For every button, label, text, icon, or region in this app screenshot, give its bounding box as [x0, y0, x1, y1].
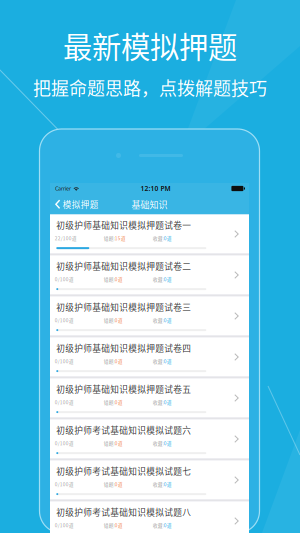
staticText: 0道 [164, 481, 172, 488]
staticText: 0道 [115, 481, 123, 488]
button[interactable]: 初级护师基础知识模拟押题试卷二 [50, 255, 249, 294]
staticText: Carrier [55, 185, 71, 192]
staticText: 把握命题思路，点拨解题技巧 [33, 74, 267, 101]
staticText: 初级护师基础知识模拟押题试卷一 [56, 219, 191, 231]
staticText: 初级护师基础知识模拟押题试卷二 [56, 260, 191, 272]
staticText: 0道 [115, 440, 123, 447]
button[interactable]: 初级护师基础知识模拟押题试卷五 [50, 378, 249, 417]
staticText: 0道 [164, 276, 172, 283]
staticText: 0道 [115, 317, 123, 324]
button[interactable]: 初级护师考试基础知识模拟试题七 [50, 460, 249, 499]
staticText: 收藏: [153, 481, 164, 488]
staticText: 初级护师基础知识模拟押题试卷三 [56, 301, 191, 313]
staticText: 0道 [164, 358, 172, 365]
staticText: 0道 [115, 358, 123, 365]
staticText: 0道 [164, 440, 172, 447]
staticText: 错题: [104, 358, 115, 365]
staticText: 0道 [164, 399, 172, 406]
button[interactable]: 初级护师考试基础知识模拟试题八 [50, 501, 249, 533]
staticText: 初级护师基础知识模拟押题试卷四 [56, 342, 191, 354]
staticText: 错题: [104, 399, 115, 406]
staticText: 错题: [104, 522, 115, 529]
button[interactable]: 初级护师考试基础知识模拟试题六 [50, 419, 249, 458]
staticText: 15道 [115, 235, 126, 242]
staticText: 0道 [115, 522, 123, 529]
staticText: 0/100道 [55, 276, 74, 283]
staticText: 初级护师考试基础知识模拟试题六 [56, 424, 191, 436]
button[interactable]: 初级护师基础知识模拟押题试卷一 [50, 214, 249, 253]
staticText: 收藏: [153, 399, 164, 406]
staticText: 0/100道 [55, 440, 74, 447]
staticText: 0/100道 [55, 358, 74, 365]
staticText: 收藏: [153, 235, 164, 242]
staticText: 错题: [104, 481, 115, 488]
staticText: 收藏: [153, 317, 164, 324]
staticText: 错题: [104, 276, 115, 283]
staticText: 0/100道 [55, 481, 74, 488]
staticText: 0道 [164, 522, 172, 529]
staticText: 基础知识 [131, 198, 167, 211]
staticText: 收藏: [153, 358, 164, 365]
button[interactable]: 初级护师基础知识模拟押题试卷四 [50, 337, 249, 376]
staticText: 初级护师考试基础知识模拟试题八 [56, 506, 191, 518]
button[interactable]: 模拟押题 [50, 194, 105, 214]
staticText: 收藏: [153, 276, 164, 283]
staticText: 0道 [115, 276, 123, 283]
staticText: 0/100道 [55, 317, 74, 324]
staticText: 0/100道 [55, 522, 74, 529]
staticText: 模拟押题 [63, 198, 99, 210]
staticText: 0道 [164, 317, 172, 324]
staticText: 0道 [164, 235, 172, 242]
staticText: 初级护师基础知识模拟押题试卷五 [56, 383, 191, 395]
staticText: 收藏: [153, 440, 164, 447]
button[interactable]: 初级护师基础知识模拟押题试卷三 [50, 296, 249, 335]
staticText: 0道 [115, 399, 123, 406]
staticText: 收藏: [153, 522, 164, 529]
staticText: 错题: [104, 235, 115, 242]
staticText: 22/100道 [55, 235, 77, 242]
staticText: 0/100道 [55, 399, 74, 406]
staticText: 初级护师考试基础知识模拟试题七 [56, 465, 191, 477]
staticText: 错题: [104, 317, 115, 324]
staticText: 最新模拟押题 [63, 24, 237, 66]
staticText: 12:10 PM [140, 184, 170, 193]
staticText: 错题: [104, 440, 115, 447]
